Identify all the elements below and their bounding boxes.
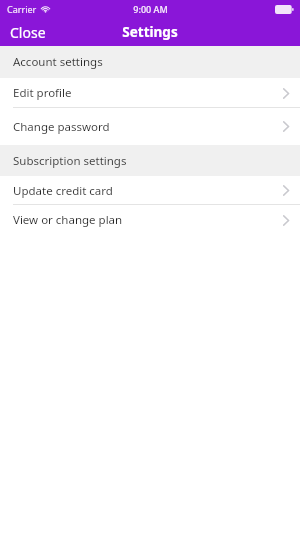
staticText: Edit profile [13,85,72,101]
button[interactable]: Close [0,18,56,46]
button[interactable]: Edit profile [0,78,300,108]
staticText: Subscription settings [13,153,127,169]
button[interactable]: View or change plan [0,205,300,235]
button[interactable]: Update credit card [0,176,300,205]
staticText: Carrier [7,3,37,15]
staticText: View or change plan [13,212,123,228]
button[interactable]: Change password [0,108,300,145]
staticText: Change password [13,119,110,135]
staticText: Settings [122,23,178,41]
staticText: Account settings [13,54,103,70]
staticText: 9:00 AM [133,3,168,15]
staticText: Update credit card [13,183,113,199]
staticText: Close [10,23,46,42]
